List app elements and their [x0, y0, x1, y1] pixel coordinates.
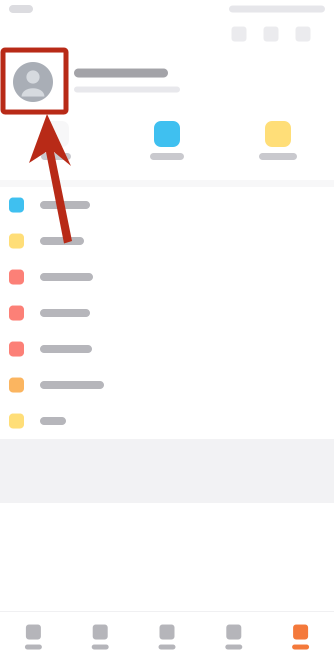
button[interactable]	[0, 295, 334, 331]
button[interactable]	[0, 187, 334, 223]
button[interactable]: Tab 2	[67, 612, 134, 662]
button[interactable]: Tab 5	[267, 612, 334, 662]
button[interactable]: Tab 1	[0, 612, 67, 662]
button[interactable]	[0, 50, 334, 114]
button[interactable]: Search	[223, 19, 255, 49]
button[interactable]	[0, 403, 334, 439]
button[interactable]	[222, 114, 333, 180]
button[interactable]	[0, 259, 334, 295]
button[interactable]	[0, 223, 334, 259]
button[interactable]: Scan	[255, 19, 287, 49]
button[interactable]	[0, 367, 334, 403]
button[interactable]	[0, 114, 111, 180]
button[interactable]: More	[287, 19, 319, 49]
button[interactable]	[0, 331, 334, 367]
button[interactable]	[111, 114, 222, 180]
button[interactable]: Tab 3	[134, 612, 200, 662]
button[interactable]: Tab 4	[200, 612, 267, 662]
